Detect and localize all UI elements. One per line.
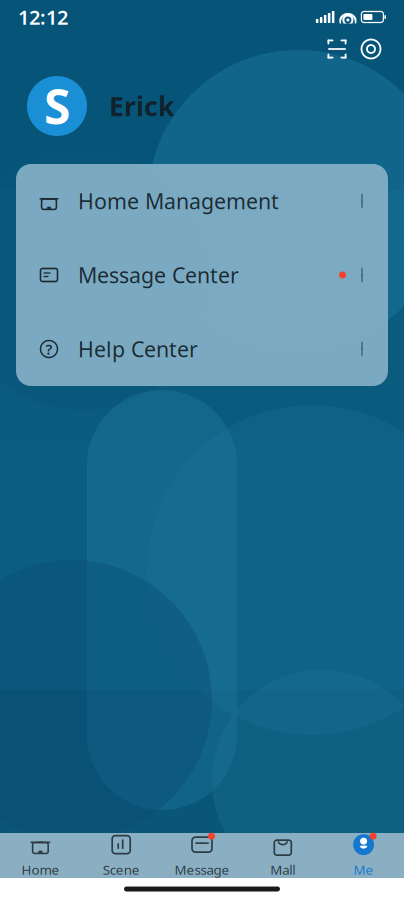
- staticText: Home Management: [78, 187, 279, 215]
- staticText: Help Center: [78, 335, 198, 363]
- staticText: Mall: [270, 861, 295, 878]
- button[interactable]: Scene: [81, 827, 162, 884]
- button[interactable]: Settings: [354, 32, 388, 66]
- staticText: Home: [21, 861, 59, 878]
- button[interactable]: Mall: [242, 827, 323, 884]
- button[interactable]: Message: [162, 827, 242, 884]
- staticText: ?: [45, 339, 52, 359]
- button[interactable]: Scan QR code: [320, 32, 354, 66]
- staticText: Scene: [103, 861, 140, 878]
- button[interactable]: ?: [16, 312, 388, 386]
- staticText: Erick: [109, 88, 175, 124]
- staticText: 12:12: [18, 4, 68, 30]
- button[interactable]: Message Center: [16, 238, 388, 312]
- staticText: S: [44, 74, 70, 138]
- button[interactable]: S: [0, 64, 404, 148]
- button[interactable]: Me: [323, 827, 404, 884]
- button[interactable]: Home: [0, 827, 81, 884]
- staticText: Me: [354, 861, 374, 878]
- button[interactable]: Home Management: [16, 164, 388, 238]
- staticText: Message: [174, 861, 229, 878]
- staticText: Message Center: [78, 261, 239, 289]
